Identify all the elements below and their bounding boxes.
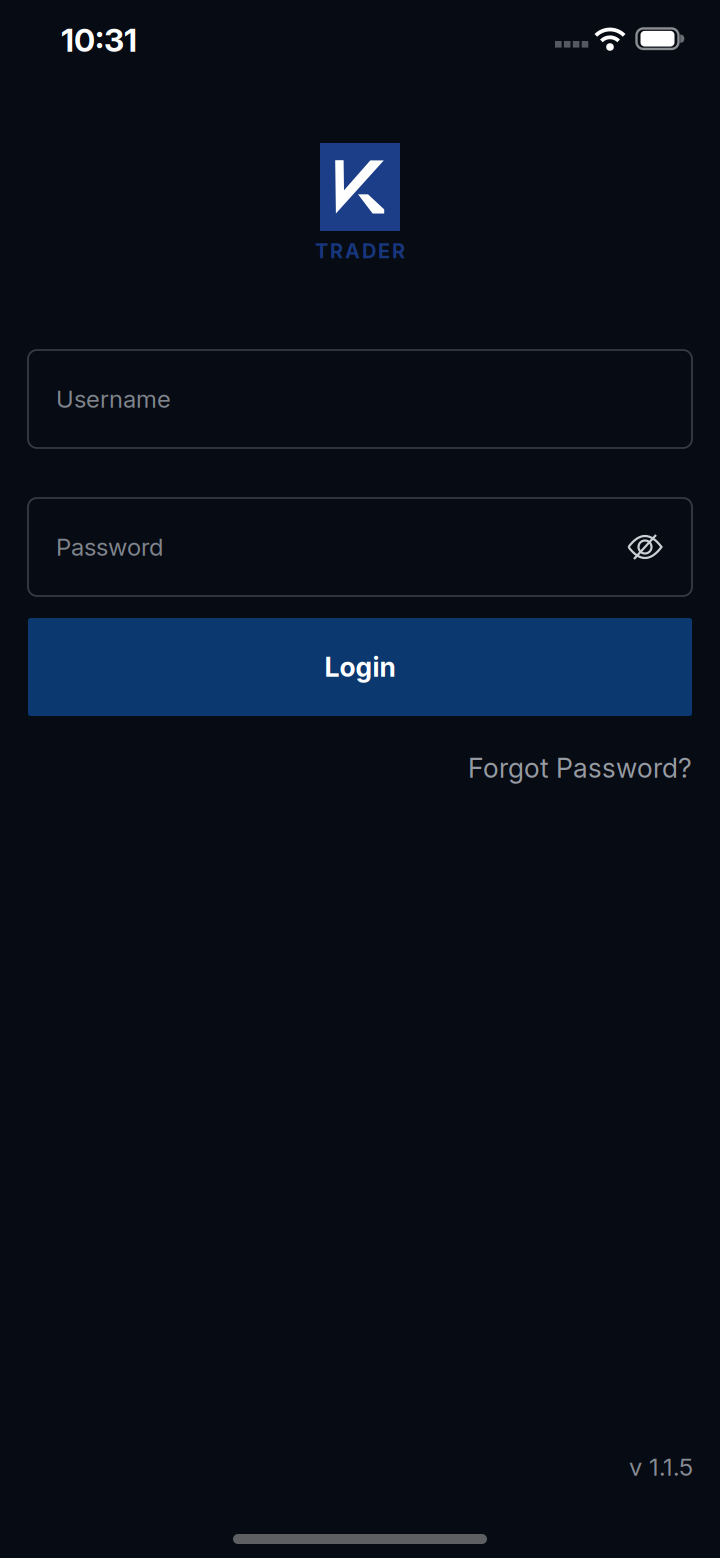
staticText: Password (56, 533, 163, 561)
button[interactable]: Password (28, 498, 692, 596)
button[interactable]: Forgot Password? (468, 752, 692, 784)
staticText: T R A D E R (315, 239, 405, 263)
button[interactable] (623, 525, 667, 569)
button[interactable]: Username (28, 350, 692, 448)
staticText: 10:31 (61, 21, 137, 59)
staticText: Login (324, 651, 395, 683)
staticText: Username (56, 385, 171, 413)
staticText: Forgot Password? (468, 752, 692, 784)
button[interactable]: Login (28, 618, 692, 716)
staticText: v 1.1.5 (629, 1453, 693, 1481)
